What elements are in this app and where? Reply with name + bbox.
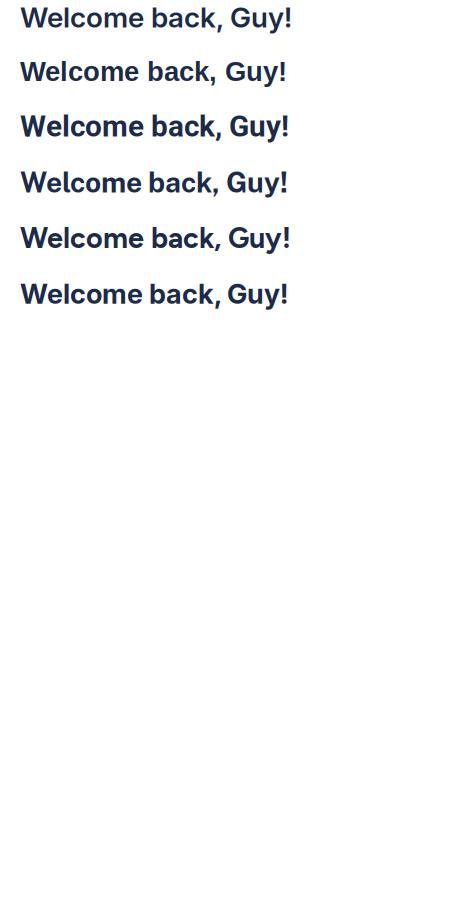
staticText: Welcome back, Guy! — [20, 221, 291, 255]
staticText: Welcome back, Guy! — [20, 0, 292, 34]
staticText: Welcome back, Guy! — [20, 56, 287, 87]
staticText: Welcome back, Guy! — [20, 277, 288, 310]
staticText: Welcome back, Guy! — [20, 166, 288, 199]
staticText: Welcome back, Guy! — [20, 109, 289, 144]
